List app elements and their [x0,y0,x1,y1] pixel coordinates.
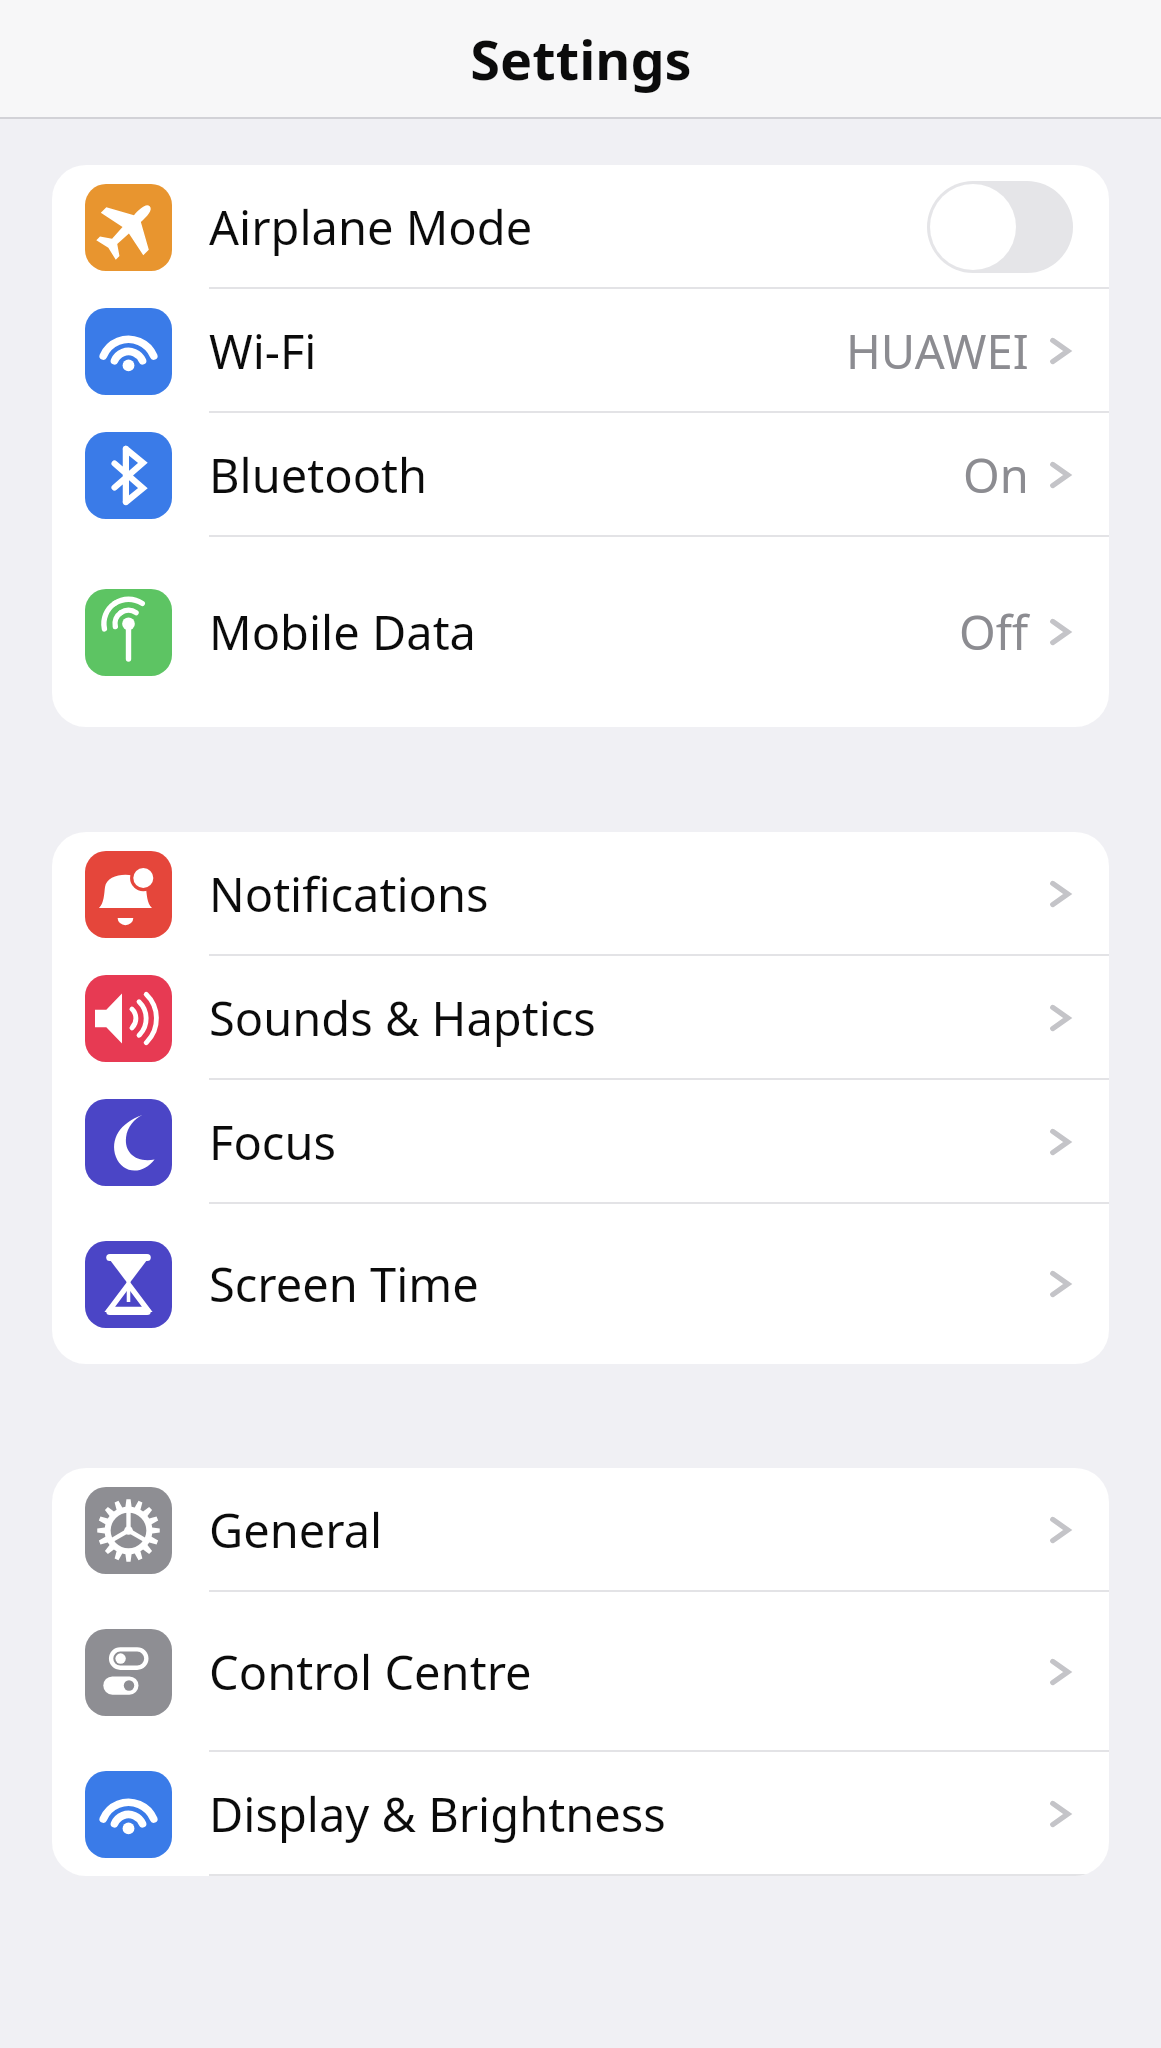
staticText: Bluetooth [209,443,428,507]
staticText: Airplane Mode [209,195,533,259]
button[interactable]: Sounds & Haptics [52,956,1109,1080]
button[interactable]: Notifications [52,832,1109,956]
button[interactable]: Bluetooth [52,413,1109,537]
staticText: General [209,1498,383,1562]
staticText: On [963,443,1029,507]
staticText: Mobile Data [209,600,476,664]
button[interactable]: General [52,1468,1109,1592]
button[interactable]: Airplane Mode [52,165,1109,289]
staticText: Wi-Fi [209,319,317,383]
staticText: Settings [470,22,692,96]
staticText: Off [959,600,1029,664]
staticText: Focus [209,1110,336,1174]
button[interactable]: Screen Time [52,1204,1109,1364]
staticText: Screen Time [209,1252,479,1316]
button[interactable]: Mobile Data [52,537,1109,727]
staticText: Sounds & Haptics [209,986,596,1050]
staticText: Display & Brightness [209,1782,666,1846]
staticText: Control Centre [209,1640,532,1704]
staticText: HUAWEI [846,319,1029,383]
button[interactable]: Display & Brightness [52,1752,1109,1876]
button[interactable]: Control Centre [52,1592,1109,1752]
button[interactable]: Wi-Fi [52,289,1109,413]
staticText: Notifications [209,862,489,926]
button[interactable]: Focus [52,1080,1109,1204]
button[interactable]: Airplane Mode, off [927,181,1073,273]
